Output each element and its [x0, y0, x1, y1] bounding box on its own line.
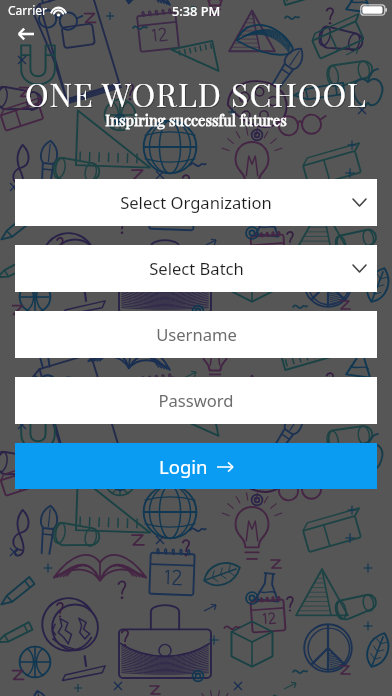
button[interactable]: Username	[15, 311, 377, 358]
staticText: Select Batch	[149, 257, 244, 280]
staticText: ONE WORLD SCHOOL	[0, 72, 392, 115]
staticText: Password	[158, 389, 234, 412]
button[interactable]: Password	[15, 377, 377, 424]
staticText: Login	[159, 454, 208, 479]
button[interactable]: Select Batch	[15, 245, 377, 292]
staticText: Inspiring successful futures	[0, 110, 392, 129]
staticText: Select Organization	[120, 191, 272, 214]
button[interactable]: Back	[4, 21, 48, 47]
staticText: 5:38 PM	[172, 2, 221, 19]
staticText: Carrier	[8, 2, 48, 18]
button[interactable]: Select Organization	[15, 179, 377, 226]
button[interactable]: Login	[15, 443, 377, 489]
staticText: ONE WORLD SCHOOL	[1, 73, 392, 116]
staticText: Username	[156, 323, 237, 346]
